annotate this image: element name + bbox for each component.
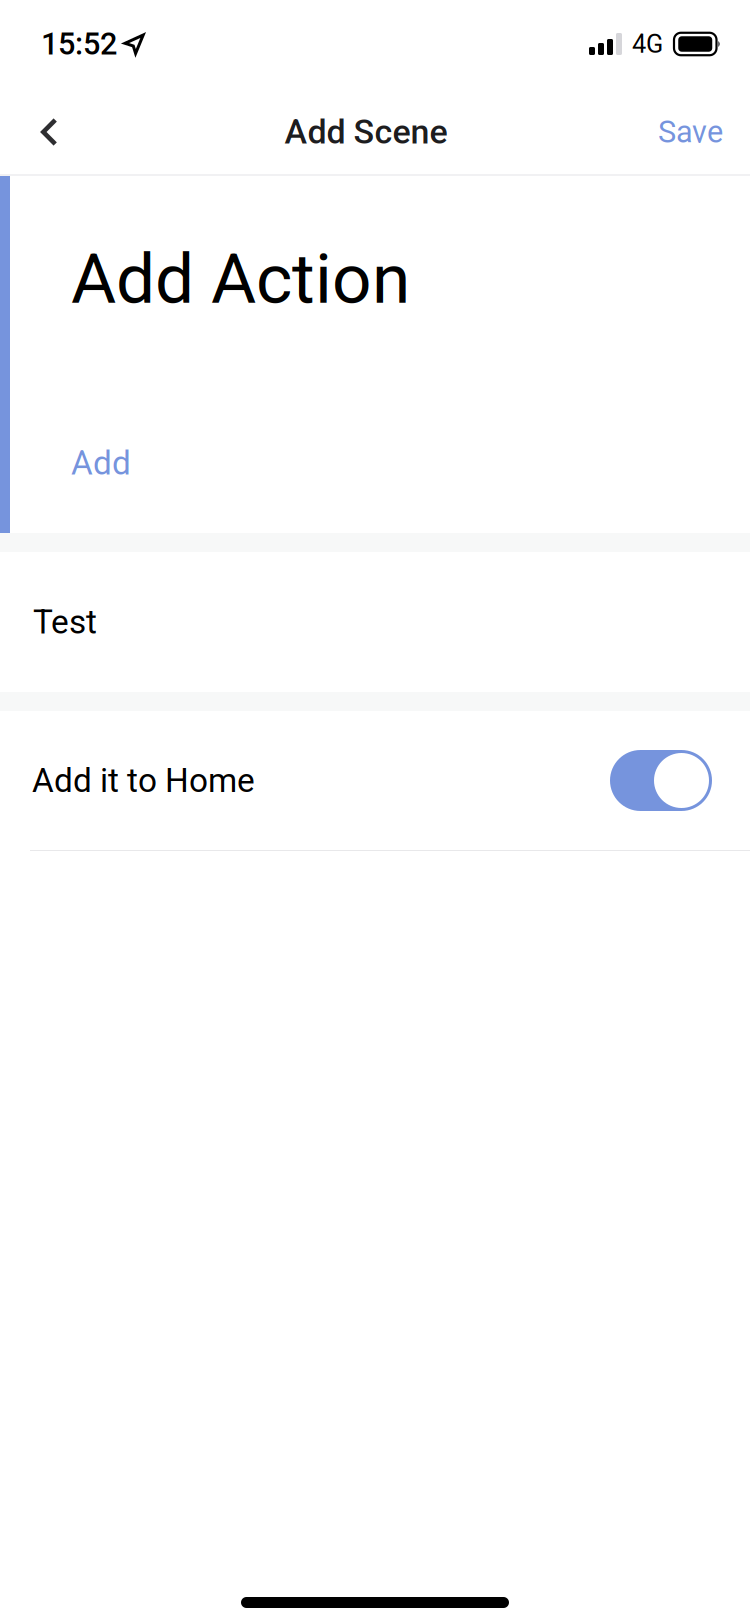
staticText: 15:52	[41, 26, 117, 62]
button[interactable]: Test	[0, 552, 750, 692]
staticText: Save	[658, 114, 723, 150]
button[interactable]: Back	[0, 87, 120, 175]
button[interactable]: Save	[610, 87, 750, 175]
staticText: Add it to Home	[32, 761, 255, 800]
button[interactable]: Add	[71, 441, 671, 485]
staticText: Add Scene	[284, 112, 447, 152]
staticText: Add	[71, 443, 131, 483]
staticText: 4G	[632, 29, 663, 59]
staticText: Add Action	[71, 238, 410, 320]
staticText: Test	[33, 602, 97, 642]
button[interactable]: Add it to Home	[0, 711, 750, 851]
